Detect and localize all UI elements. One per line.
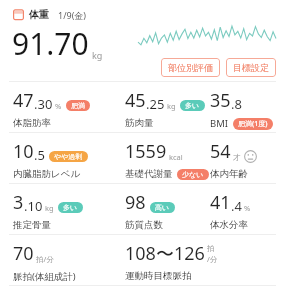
button[interactable]: 35 [210, 88, 273, 130]
staticText: kg [92, 49, 103, 61]
staticText: 多い [63, 203, 78, 212]
button[interactable]: 41 [210, 190, 251, 231]
staticText: kg [45, 203, 54, 213]
staticText: % [244, 203, 251, 213]
staticText: 98 [125, 190, 146, 215]
button[interactable]: 54 [210, 139, 257, 180]
staticText: 脈拍(体組成計) [13, 270, 76, 283]
staticText: 肥満(1度) [238, 119, 268, 129]
staticText: 推定骨量 [13, 219, 51, 231]
staticText: 70 [13, 241, 34, 266]
staticText: 運動時目標脈拍 [125, 270, 192, 282]
staticText: 体脂肪率 [13, 117, 51, 129]
staticText: 47 [13, 88, 34, 113]
staticText: 1/9(金) [58, 9, 87, 21]
staticText: 108〜126 [125, 241, 205, 266]
button[interactable]: 70 [13, 241, 76, 283]
staticText: % [55, 101, 62, 111]
staticText: .5 [34, 146, 45, 164]
staticText: 41 [210, 190, 231, 215]
other: Calendar [13, 9, 24, 20]
staticText: 筋質点数 [125, 219, 163, 231]
staticText: 筋肉量 [125, 117, 154, 129]
staticText: 体重 [29, 8, 49, 21]
staticText: 体内年齢 [210, 168, 248, 180]
staticText: 部位別評価 [168, 62, 213, 73]
button[interactable]: 目標設定 [226, 58, 276, 77]
staticText: 目標設定 [233, 62, 269, 73]
button[interactable]: 98 [125, 190, 175, 231]
staticText: .25 [146, 95, 165, 113]
button[interactable]: 1559 [125, 139, 209, 180]
staticText: 高い [155, 203, 170, 212]
staticText: 35 [210, 88, 231, 113]
staticText: BMI [210, 117, 229, 130]
staticText: 体水分率 [210, 219, 248, 231]
button[interactable]: 10 [13, 139, 88, 180]
staticText: 基礎代謝量 [125, 168, 173, 180]
staticText: 才 [233, 153, 241, 162]
staticText: 91.70 [12, 23, 89, 64]
button[interactable]: 47 [13, 88, 90, 129]
staticText: 少ない [182, 170, 204, 179]
staticText: 1559 [125, 139, 167, 164]
staticText: .4 [231, 197, 242, 215]
staticText: 拍/分 [207, 244, 210, 264]
button[interactable]: 3 [13, 190, 83, 231]
staticText: kcal [169, 152, 183, 162]
button[interactable]: 108〜126 [125, 241, 210, 282]
button[interactable]: 部位別評価 [161, 58, 220, 77]
staticText: 拍/分 [36, 254, 54, 264]
staticText: 肥満 [71, 101, 85, 110]
staticText: 10 [13, 139, 34, 164]
staticText: 多い [185, 101, 200, 110]
staticText: .30 [34, 95, 53, 113]
staticText: kg [167, 101, 176, 111]
staticText: .10 [24, 197, 43, 215]
staticText: やや過剰 [54, 152, 83, 161]
staticText: 内臓脂肪レベル [13, 168, 81, 180]
button[interactable]: 45 [125, 88, 205, 129]
staticText: 45 [125, 88, 146, 113]
staticText: .8 [231, 95, 242, 113]
staticText: 54 [210, 139, 231, 164]
staticText: 3 [13, 190, 24, 215]
